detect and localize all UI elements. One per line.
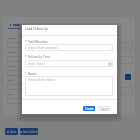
button[interactable]: Create (83, 106, 95, 111)
button[interactable]: Select Staff member... (25, 44, 113, 51)
staticText: * (25, 72, 27, 76)
button[interactable]: Save & Exit (20, 128, 38, 135)
button[interactable]: Save (5, 128, 18, 135)
button[interactable]: Please Enter Notes (25, 76, 113, 96)
button[interactable]: Cancel (97, 106, 111, 111)
staticText: Staff Member (28, 40, 48, 44)
staticText: Cancel (100, 107, 109, 111)
other: Pick time (108, 62, 112, 66)
staticText: Notes (28, 72, 37, 76)
staticText: Please Enter Notes (28, 78, 56, 82)
staticText: Enter Time (28, 62, 44, 66)
staticText: Lead Follow Up (25, 27, 48, 31)
staticText: Create (85, 107, 94, 111)
button[interactable]: Enter Time (25, 60, 113, 67)
staticText: * (25, 55, 27, 59)
staticText: * (25, 40, 27, 44)
staticText: Save (10, 130, 17, 134)
staticText: Follow Up Time (28, 55, 51, 59)
button[interactable]: Add (125, 74, 131, 80)
other: Open dropdown (108, 46, 112, 50)
staticText: Select Staff member... (28, 46, 60, 50)
staticText: Save & Exit (23, 130, 38, 134)
